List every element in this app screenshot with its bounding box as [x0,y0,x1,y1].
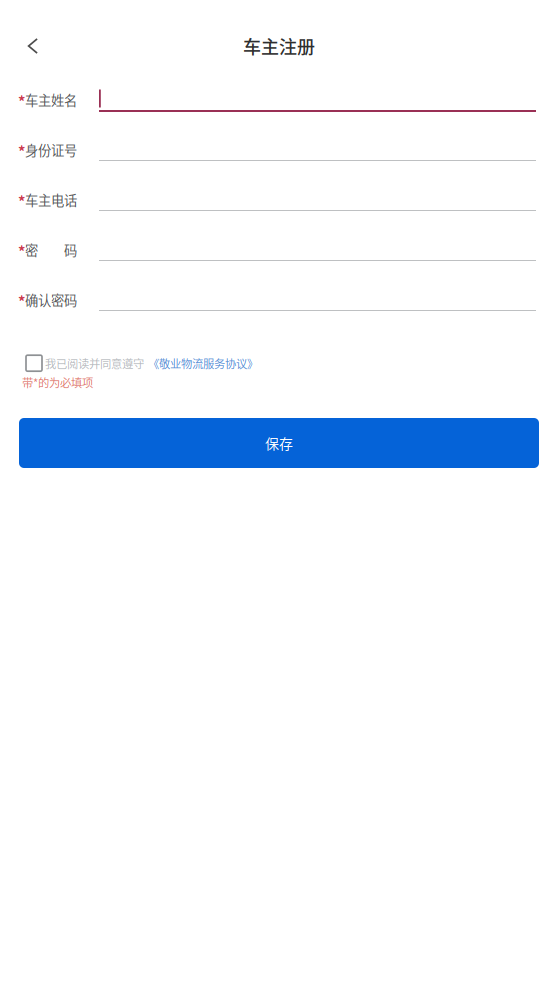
button[interactable]: * [0,182,558,232]
staticText: 车主注册 [243,33,315,59]
staticText: 身份证号 [25,140,77,159]
staticText: 确认密码 [25,290,77,309]
staticText: 《敬业物流服务协议》 [148,355,258,371]
button[interactable]: * [0,132,558,182]
staticText: 车主电话 [25,190,77,209]
staticText: 密 码 [25,240,77,259]
staticText: * [18,90,25,111]
button[interactable]: * [0,82,558,132]
staticText: * [18,190,25,211]
staticText: 我已阅读并同意遵守 [45,355,144,371]
button[interactable]: * [0,232,558,282]
staticText: 车主姓名 [25,90,77,109]
button[interactable]: 《敬业物流服务协议》 [147,351,257,375]
staticText: * [18,290,25,311]
button[interactable]: * [0,282,558,332]
staticText: 带*的为必填项 [22,374,93,390]
button[interactable]: 保存 [19,418,539,468]
staticText: 保存 [265,433,293,453]
button[interactable]: 同意协议 [26,351,48,375]
button[interactable]: 返回 [11,24,55,68]
staticText: * [18,140,25,161]
staticText: * [18,240,25,261]
